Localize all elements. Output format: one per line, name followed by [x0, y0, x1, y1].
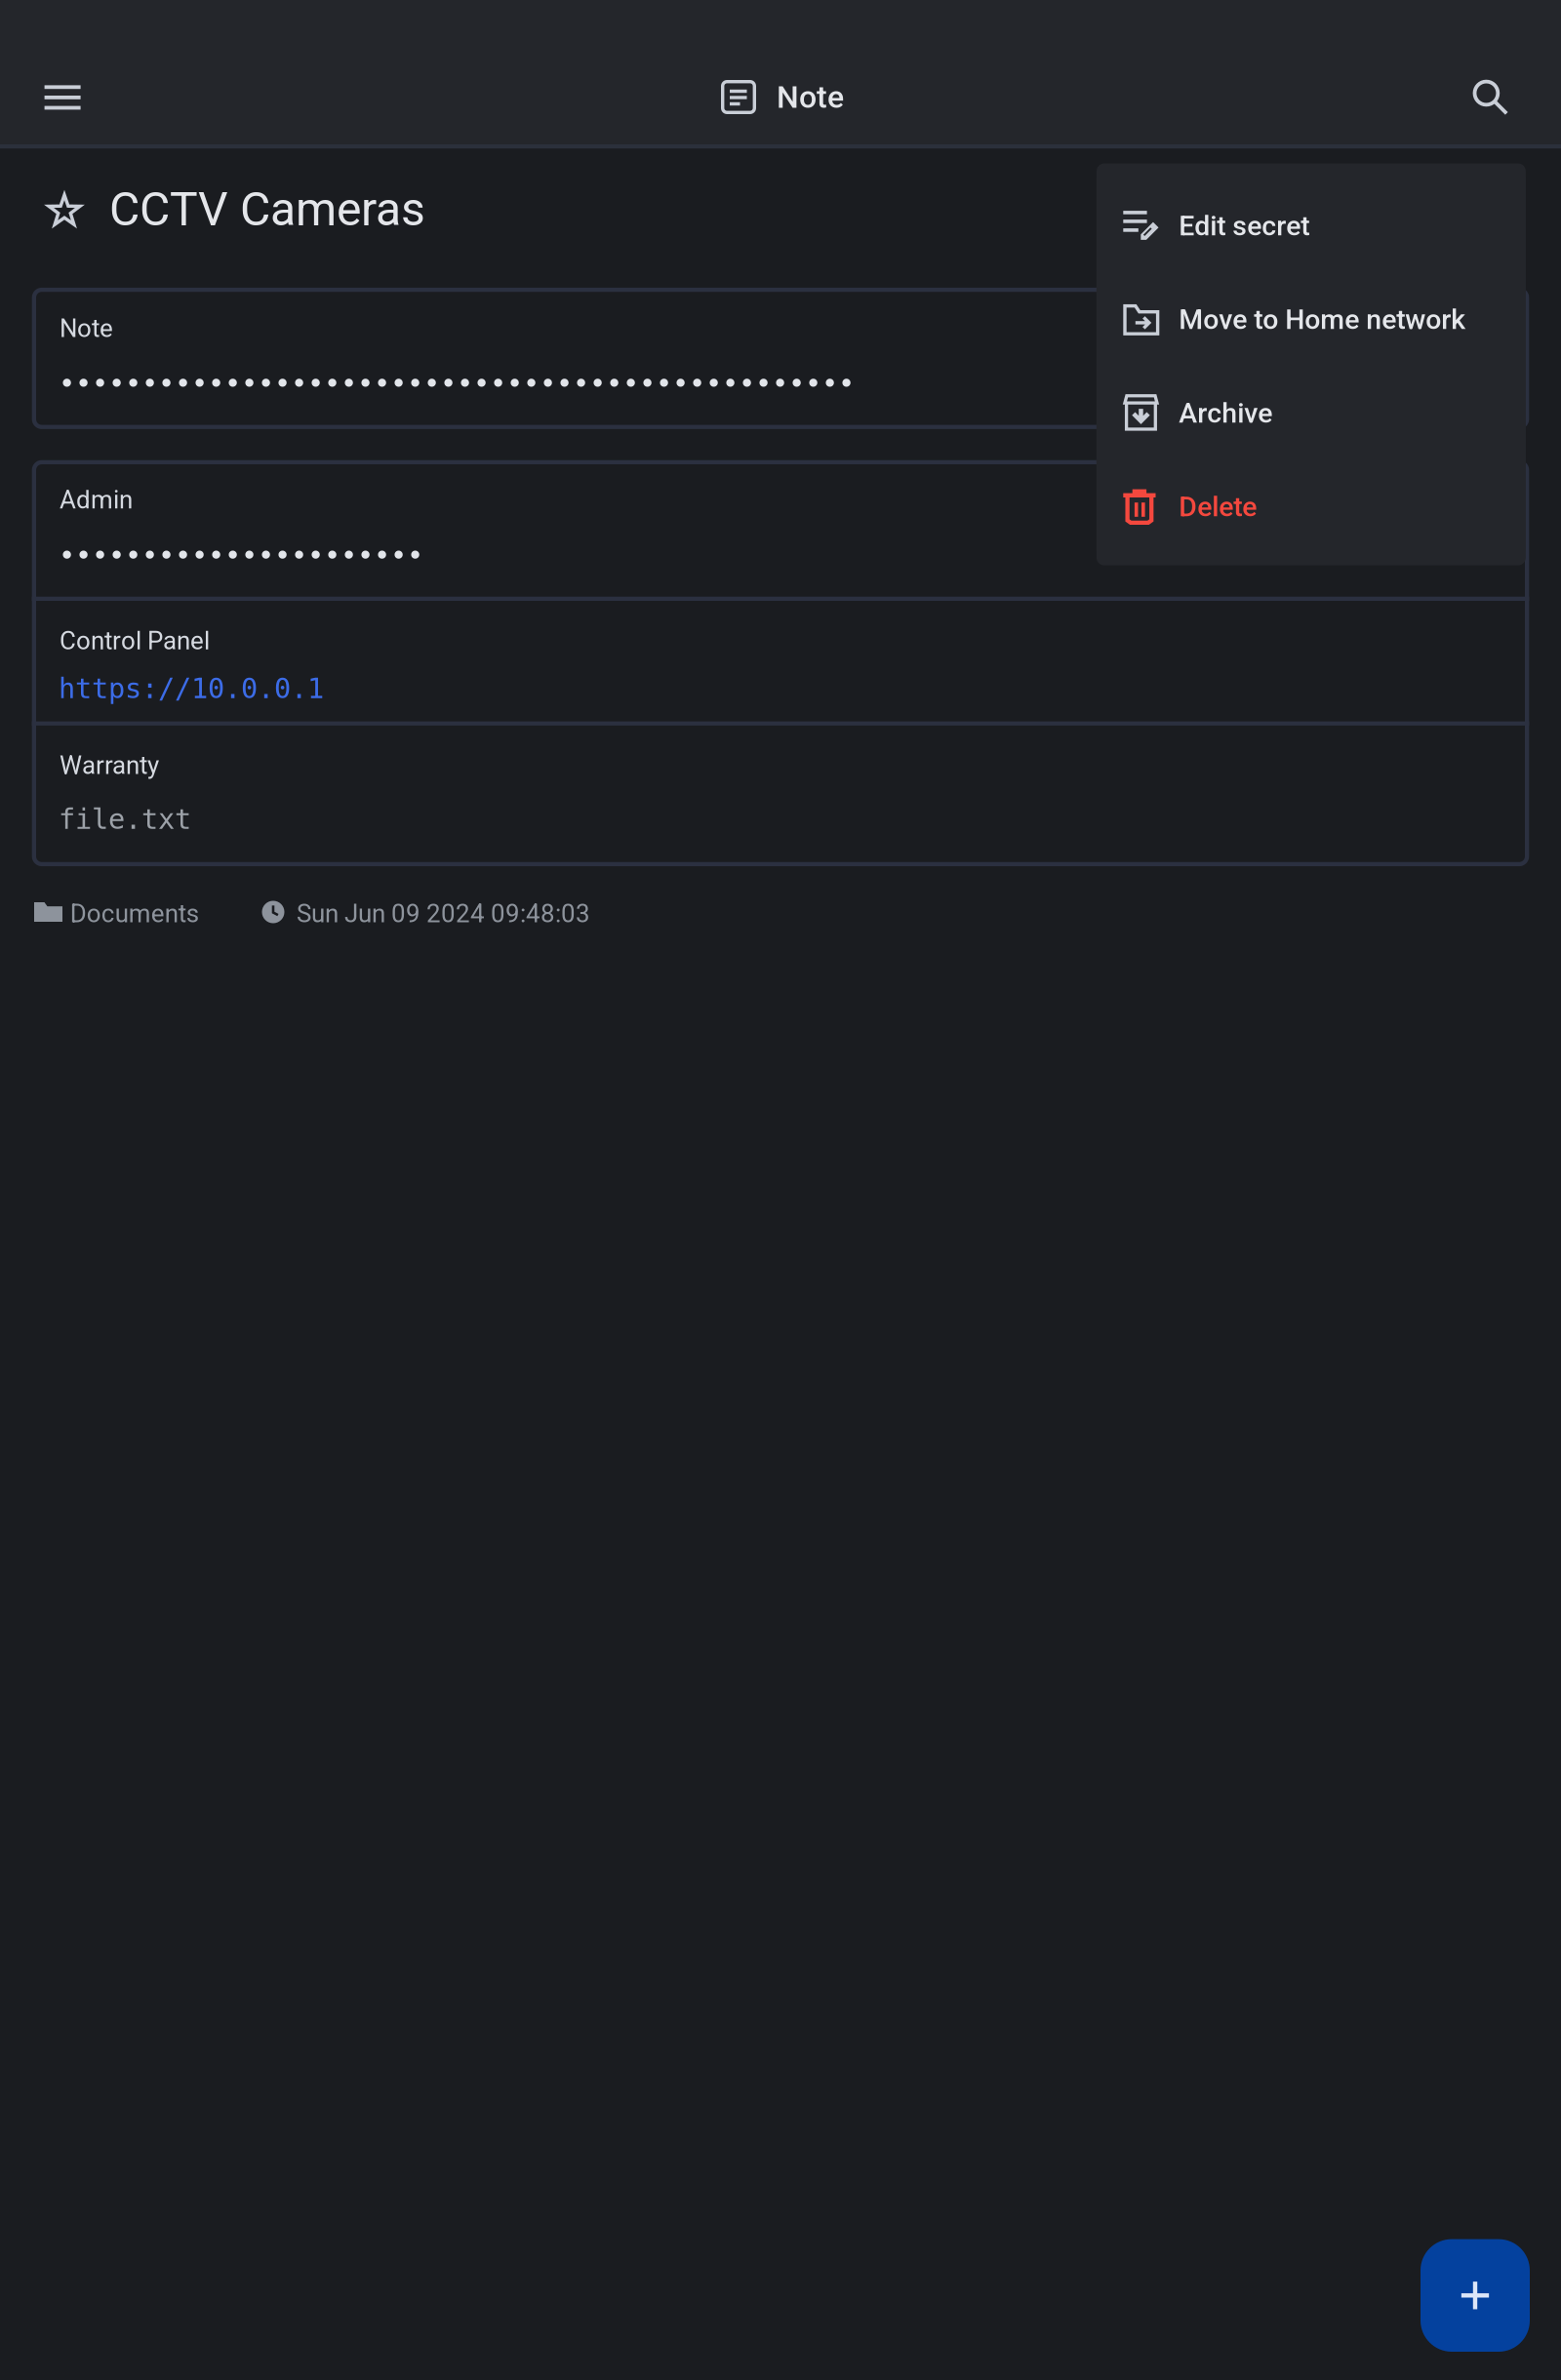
staticText: Archive	[1179, 397, 1273, 429]
staticText: Note	[777, 79, 844, 115]
staticText: ••••••••••••••••••••••	[59, 539, 423, 571]
button[interactable]: Delete	[1097, 458, 1526, 552]
button[interactable]: Control Panel	[32, 601, 1529, 721]
staticText: Note	[60, 314, 113, 343]
button[interactable]: Edit secret	[1097, 177, 1526, 271]
button[interactable]: Archive	[1097, 364, 1526, 458]
staticText: Edit secret	[1179, 210, 1310, 242]
staticText: https://10.0.0.1	[59, 672, 324, 705]
staticText: ••••••••••••••••••••••••••••••••••••••••…	[59, 367, 855, 399]
staticText: Move to Home network	[1179, 303, 1466, 336]
button[interactable]: Add to favourites	[33, 180, 96, 242]
button[interactable]: Open navigation menu	[16, 51, 109, 144]
button[interactable]: Admin	[32, 460, 1529, 597]
button[interactable]: New entry	[1421, 2239, 1530, 2352]
staticText: Documents	[70, 899, 199, 928]
staticText: CCTV Cameras	[109, 182, 425, 237]
staticText: Delete	[1179, 491, 1257, 523]
staticText: Warranty	[60, 751, 159, 780]
staticText: Control Panel	[60, 626, 210, 655]
staticText: file.txt	[59, 803, 191, 836]
button[interactable]: Warranty	[32, 726, 1529, 866]
button[interactable]: Note	[32, 288, 1529, 429]
button[interactable]: Move to Home network	[1097, 271, 1526, 364]
button[interactable]: Search	[1444, 50, 1537, 144]
staticText: Sun Jun 09 2024 09:48:03	[297, 899, 590, 928]
staticText: Admin	[60, 485, 133, 515]
